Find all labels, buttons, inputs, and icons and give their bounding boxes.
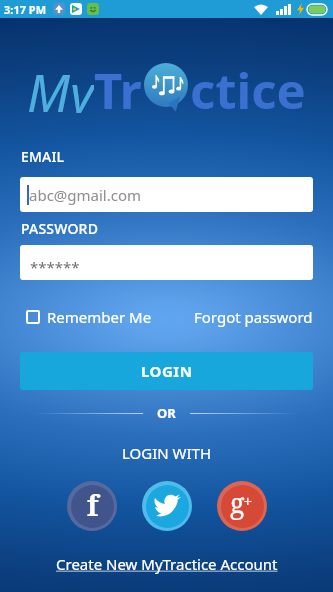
button[interactable]: g bbox=[217, 481, 267, 531]
button[interactable]: Create New MyTractice Account bbox=[56, 554, 278, 574]
staticText: OR bbox=[157, 404, 176, 422]
staticText: g bbox=[230, 485, 245, 521]
staticText: Tr bbox=[94, 57, 142, 113]
button[interactable]: LOGIN bbox=[20, 352, 313, 390]
staticText: PASSWORD bbox=[21, 219, 99, 238]
button[interactable]: f bbox=[67, 481, 117, 531]
button[interactable]: Remember Me bbox=[26, 307, 152, 327]
button[interactable]: abc@gmail.com bbox=[20, 177, 313, 212]
staticText: Remember Me bbox=[47, 307, 152, 327]
staticText: f bbox=[87, 486, 99, 524]
button[interactable] bbox=[142, 481, 192, 531]
staticText: abc@gmail.com bbox=[29, 185, 142, 205]
staticText: + bbox=[243, 489, 253, 512]
staticText: 3:17 PM bbox=[4, 2, 47, 17]
button[interactable]: ****** bbox=[20, 245, 313, 280]
staticText: EMAIL bbox=[21, 147, 65, 166]
button[interactable]: Forgot password bbox=[194, 307, 313, 327]
staticText: My bbox=[27, 57, 94, 113]
staticText: LOGIN WITH bbox=[122, 443, 212, 463]
staticText: ****** bbox=[30, 257, 80, 277]
staticText: ctice bbox=[190, 57, 306, 113]
staticText: LOGIN bbox=[141, 361, 193, 381]
